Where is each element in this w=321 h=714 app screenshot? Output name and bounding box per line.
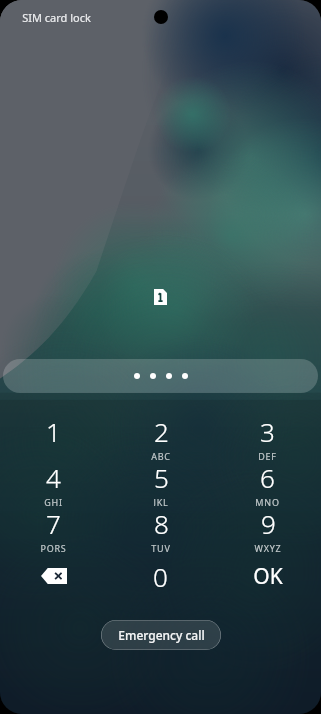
staticText: 1	[46, 414, 61, 449]
staticText: WXYZ	[254, 542, 282, 552]
button[interactable]: 8	[107, 506, 214, 552]
staticText: OK	[253, 562, 283, 591]
button[interactable]: 2	[107, 414, 214, 460]
staticText: MNO	[255, 496, 280, 506]
staticText: 5	[154, 460, 169, 495]
staticText: GHI	[44, 496, 63, 506]
staticText: 2	[154, 414, 169, 449]
staticText: 0	[153, 559, 168, 594]
button[interactable]: Emergency call	[101, 620, 221, 650]
staticText: TUV	[151, 542, 171, 552]
staticText: SIM card lock	[22, 10, 91, 25]
button[interactable]: 9	[214, 506, 321, 552]
button[interactable]: 3	[214, 414, 321, 460]
button[interactable]	[3, 359, 318, 393]
staticText: 9	[261, 506, 276, 541]
staticText: 3	[260, 414, 275, 449]
button[interactable]: 1	[0, 414, 107, 460]
button[interactable]: Backspace	[0, 552, 107, 600]
staticText: ABC	[151, 450, 171, 460]
staticText: 4	[46, 460, 61, 495]
button[interactable]: 7	[0, 506, 107, 552]
staticText: 7	[46, 506, 61, 541]
staticText: DEF	[258, 450, 277, 460]
button[interactable]: 0	[107, 552, 214, 600]
staticText: JKL	[153, 496, 169, 506]
staticText: 6	[260, 460, 275, 495]
button[interactable]: 5	[107, 460, 214, 506]
staticText: PQRS	[40, 542, 67, 552]
button[interactable]: 4	[0, 460, 107, 506]
button[interactable]: OK	[214, 552, 321, 600]
staticText: Emergency call	[118, 627, 205, 643]
button[interactable]: 6	[214, 460, 321, 506]
staticText: 8	[154, 506, 169, 541]
